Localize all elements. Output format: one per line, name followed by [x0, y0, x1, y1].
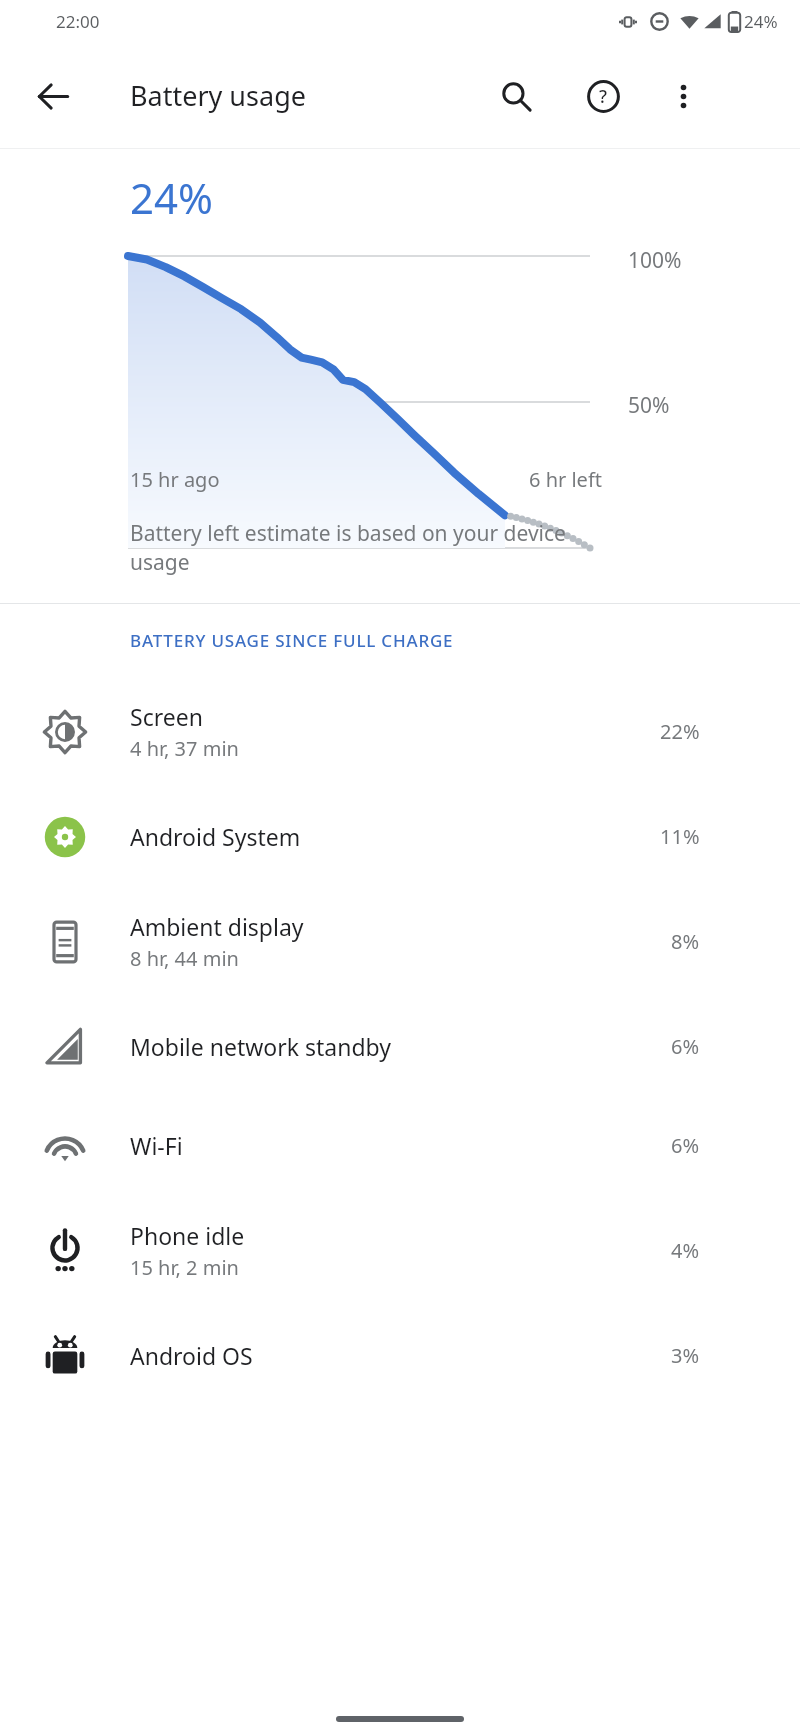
button[interactable]: Android OS — [0, 1306, 800, 1405]
staticText: Mobile network standby — [130, 1031, 391, 1062]
staticText: 50% — [628, 391, 670, 420]
staticText: 6 hr left — [529, 466, 602, 493]
staticText: Wi-Fi — [130, 1130, 183, 1161]
staticText: 22:00 — [56, 10, 100, 33]
staticText: Android System — [130, 821, 301, 852]
button[interactable]: Mobile network standby — [0, 997, 800, 1096]
button[interactable]: Android System — [0, 787, 800, 886]
button[interactable]: Ambient display — [0, 886, 800, 997]
staticText: 15 hr ago — [130, 466, 220, 493]
staticText: BATTERY USAGE SINCE FULL CHARGE — [130, 629, 454, 652]
staticText: Battery usage — [130, 77, 306, 114]
staticText: 24% — [744, 10, 778, 33]
button[interactable]: Screen — [0, 676, 800, 787]
staticText: 8% — [671, 928, 700, 955]
staticText: 4 hr, 37 min — [130, 735, 239, 762]
staticText: 15 hr, 2 min — [130, 1254, 239, 1281]
staticText: 24% — [130, 169, 213, 226]
button[interactable]: Wi-Fi — [0, 1096, 800, 1195]
staticText: Phone idle — [130, 1220, 245, 1251]
staticText: 8 hr, 44 min — [130, 945, 239, 972]
button[interactable]: Search — [485, 65, 547, 127]
staticText: Ambient display — [130, 911, 304, 942]
staticText: Android OS — [130, 1340, 253, 1371]
staticText: 6% — [671, 1132, 700, 1159]
staticText: 6% — [671, 1033, 700, 1060]
button[interactable]: Back — [22, 65, 84, 127]
staticText: 3% — [671, 1342, 700, 1369]
staticText: Battery left estimate is based on your d… — [130, 519, 566, 577]
staticText: 4% — [671, 1237, 700, 1264]
button[interactable]: Help — [572, 65, 634, 127]
button[interactable]: Phone idle — [0, 1195, 800, 1306]
staticText: 22% — [660, 718, 700, 745]
staticText: ? — [599, 84, 608, 109]
staticText: 100% — [628, 246, 682, 275]
staticText: 11% — [660, 823, 700, 850]
staticText: Screen — [130, 701, 203, 732]
button[interactable]: More options — [652, 65, 714, 127]
